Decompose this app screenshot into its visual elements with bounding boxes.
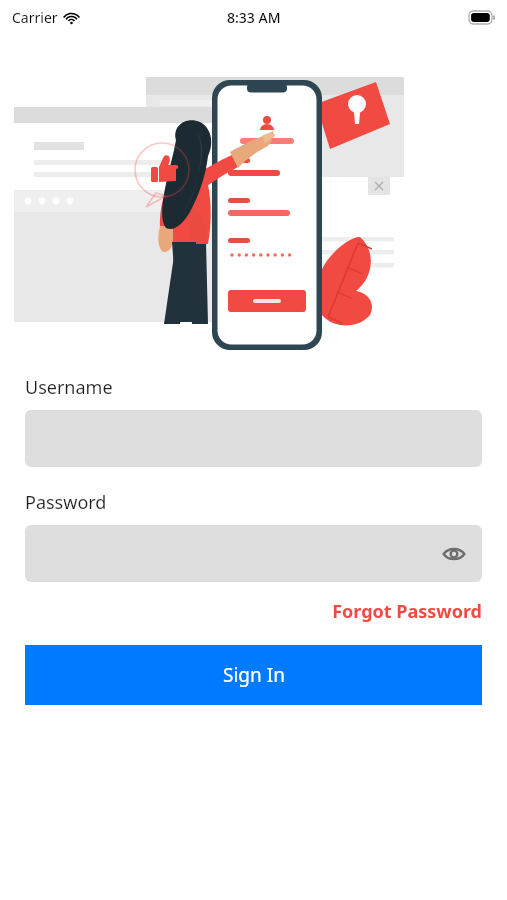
staticText: Username <box>25 375 113 400</box>
staticText: Password <box>25 490 107 515</box>
staticText: Sign In <box>223 662 285 688</box>
button[interactable]: Forgot Password <box>25 599 482 624</box>
staticText: Carrier <box>12 8 58 27</box>
staticText: 8:33 AM <box>227 8 281 27</box>
button[interactable]: Show password <box>436 536 472 572</box>
staticText: Forgot Password <box>332 599 482 624</box>
button[interactable]: Sign In <box>25 645 482 705</box>
button[interactable]: Show password <box>25 525 482 582</box>
